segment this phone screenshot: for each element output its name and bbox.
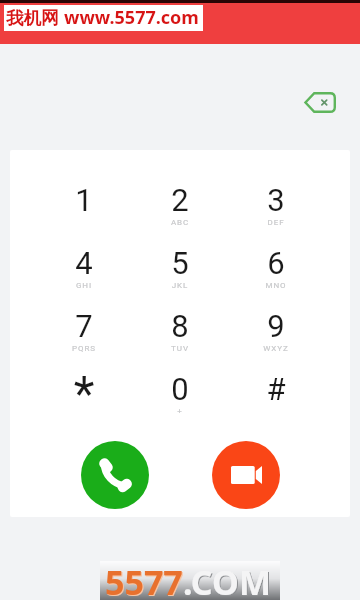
- staticText: 5577: [105, 559, 183, 598]
- staticText: 我机网: [6, 7, 59, 29]
- button[interactable]: 2: [132, 169, 228, 232]
- button[interactable]: Backspace: [296, 79, 342, 125]
- staticText: 1: [36, 182, 132, 218]
- button[interactable]: 1: [36, 169, 132, 232]
- staticText: 0: [132, 371, 228, 407]
- button[interactable]: 3: [228, 169, 324, 232]
- staticText: 5: [132, 245, 228, 281]
- staticText: ABC: [132, 218, 228, 227]
- staticText: JKL: [132, 281, 228, 290]
- staticText: MNO: [228, 281, 324, 290]
- staticText: WXYZ: [228, 344, 324, 353]
- staticText: GHI: [36, 281, 132, 290]
- staticText: www.5577.com: [64, 5, 199, 30]
- staticText: +: [132, 407, 228, 416]
- staticText: DEF: [228, 218, 324, 227]
- button[interactable]: Call: [81, 441, 149, 509]
- staticText: .COM: [183, 559, 271, 598]
- staticText: *: [36, 365, 132, 421]
- button[interactable]: Video call: [212, 441, 280, 509]
- staticText: 9: [228, 308, 324, 344]
- staticText: 4: [36, 245, 132, 281]
- button[interactable]: 4: [36, 232, 132, 295]
- staticText: 6: [228, 245, 324, 281]
- staticText: .COM: [184, 560, 272, 599]
- button[interactable]: 9: [228, 295, 324, 358]
- button[interactable]: 5: [132, 232, 228, 295]
- button[interactable]: *: [36, 358, 132, 421]
- staticText: 7: [36, 308, 132, 344]
- staticText: TUV: [132, 344, 228, 353]
- staticText: 3: [228, 182, 324, 218]
- staticText: 2: [132, 182, 228, 218]
- staticText: 5577: [106, 560, 184, 599]
- button[interactable]: 7: [36, 295, 132, 358]
- staticText: PQRS: [36, 344, 132, 353]
- staticText: 8: [132, 308, 228, 344]
- button[interactable]: #: [228, 358, 324, 421]
- button[interactable]: 8: [132, 295, 228, 358]
- staticText: #: [228, 371, 324, 407]
- button[interactable]: 6: [228, 232, 324, 295]
- button[interactable]: 0: [132, 358, 228, 421]
